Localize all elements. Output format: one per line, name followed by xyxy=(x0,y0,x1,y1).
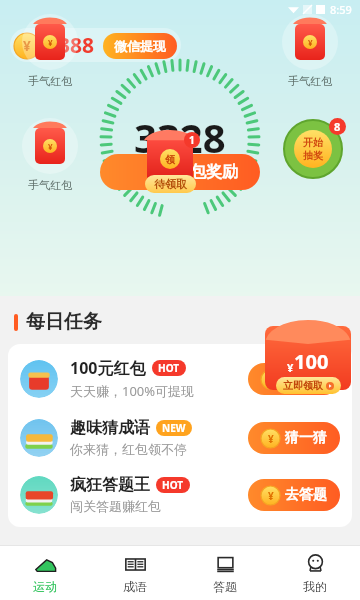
staticText: 100元红包 xyxy=(70,357,146,379)
button[interactable]: ¥ xyxy=(248,479,340,511)
staticText: HOT xyxy=(158,361,180,375)
staticText: 手气红包 xyxy=(288,74,332,88)
staticText: 3328 xyxy=(134,110,226,164)
staticText: 天天赚，100%可提现 xyxy=(70,382,195,400)
staticText: 开始 xyxy=(303,136,323,149)
staticText: 100 xyxy=(294,348,329,375)
button[interactable]: 疯狂答题王 xyxy=(8,466,352,523)
button[interactable]: 成语 xyxy=(90,546,180,600)
staticText: 红包奖励 xyxy=(174,162,238,182)
staticText: 步数自动兑换红包 xyxy=(124,166,236,184)
button[interactable]: ¥ xyxy=(248,422,340,454)
staticText: 每日任务 xyxy=(26,310,102,334)
button[interactable]: 我的 xyxy=(270,546,360,600)
staticText: 猜一猜 xyxy=(285,429,327,447)
button[interactable]: 开始抽奖 xyxy=(284,120,342,178)
staticText: 闯关答题赚红包 xyxy=(70,498,161,514)
staticText: 答题 xyxy=(213,579,237,594)
staticText: ¥ xyxy=(308,37,313,48)
staticText: 微信提现 xyxy=(114,38,166,54)
staticText: 1 xyxy=(189,133,195,147)
staticText: ¥ xyxy=(23,37,31,55)
staticText: 趣味猜成语 xyxy=(70,418,150,438)
staticText: 去答题 xyxy=(285,486,327,504)
staticText: 手气红包 xyxy=(28,178,72,192)
button[interactable]: ¥ xyxy=(16,14,84,88)
button[interactable]: 立即领取 xyxy=(276,377,341,394)
staticText: 运动 xyxy=(33,579,57,594)
staticText: NEW xyxy=(162,421,186,435)
button[interactable]: ¥ xyxy=(260,314,356,406)
button[interactable]: ¥ xyxy=(276,14,344,88)
staticText: ¥ xyxy=(268,489,274,502)
staticText: ¥ xyxy=(48,37,53,48)
button[interactable]: 微信提现 xyxy=(103,33,177,59)
staticText: 你来猜，红包领不停 xyxy=(70,441,187,457)
button[interactable]: 100元红包 xyxy=(8,348,352,409)
button[interactable]: ¥ xyxy=(16,118,84,192)
staticText: 抽奖 xyxy=(303,149,323,162)
staticText: ¥ xyxy=(287,360,294,375)
staticText: 疯狂答题王 xyxy=(70,475,150,495)
staticText: ¥ xyxy=(268,432,274,445)
staticText: 手气红包 xyxy=(28,74,72,88)
staticText: 领 xyxy=(165,153,175,166)
staticText: 待领取 xyxy=(154,177,187,191)
button[interactable]: 红包奖励 xyxy=(100,154,260,190)
staticText: HOT xyxy=(162,478,184,492)
button[interactable]: 趣味猜成语 xyxy=(8,409,352,466)
staticText: 成语 xyxy=(123,579,147,594)
button[interactable]: ¥ xyxy=(248,363,340,395)
staticText: 8 xyxy=(334,119,341,134)
staticText: 我的 xyxy=(303,579,327,594)
button[interactable]: 答题 xyxy=(180,546,270,600)
button[interactable]: ¥ xyxy=(10,28,181,62)
staticText: 3388 xyxy=(46,31,95,60)
staticText: 去赚钱 xyxy=(285,370,327,388)
staticText: 立即领取 xyxy=(283,379,323,392)
staticText: ¥ xyxy=(48,141,53,152)
button[interactable]: 运动 xyxy=(0,546,90,600)
staticText: 8:59 xyxy=(330,2,352,17)
